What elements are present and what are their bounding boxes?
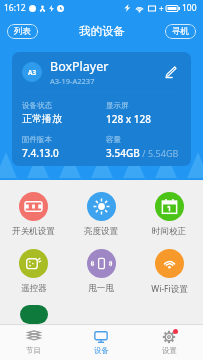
staticText: 100 (182, 2, 197, 14)
staticText: 7.4.13.0 (22, 146, 59, 160)
staticText: 3.54GB (106, 146, 140, 160)
staticText: A3 (28, 68, 37, 77)
button[interactable]: Wi-Fi设置 (135, 247, 203, 297)
button[interactable]: 设置 (135, 325, 203, 360)
button[interactable]: 时间校正 (135, 190, 203, 239)
staticText: 容量 (106, 135, 121, 144)
staticText: + (159, 3, 164, 14)
staticText: 我的设备 (79, 24, 125, 38)
staticText: 显示屏 (106, 101, 129, 110)
staticText: 设置 (162, 346, 177, 355)
staticText: / 5.54GB (140, 147, 179, 159)
button[interactable]: 列表 (7, 24, 38, 39)
button[interactable]: 开关机设置 (0, 190, 67, 239)
staticText: 开关机设置 (12, 226, 55, 237)
button[interactable]: 编辑 (159, 61, 181, 83)
staticText: 固件版本 (22, 135, 52, 144)
button[interactable]: 节目 (0, 325, 67, 360)
staticText: 时间校正 (152, 226, 186, 237)
staticText: 正常播放 (22, 112, 62, 125)
button[interactable]: 遥控器 (0, 247, 67, 296)
staticText: 16:12 (4, 2, 26, 14)
staticText: 遥控器 (21, 283, 47, 294)
button[interactable]: 亮度设置 (67, 190, 135, 239)
staticText: A3-19-A2237 (50, 76, 95, 86)
staticText: 甩一甩 (88, 283, 114, 294)
staticText: 设备 (94, 346, 109, 355)
button[interactable]: A3 (12, 52, 191, 166)
staticText: 节目 (26, 346, 41, 355)
staticText: Wi-Fi设置 (151, 283, 188, 295)
button[interactable]: 寻机 (165, 24, 196, 39)
staticText: BoxPlayer (50, 58, 109, 75)
button[interactable]: 甩一甩 (67, 247, 135, 296)
staticText: 列表 (14, 26, 31, 37)
staticText: 寻机 (172, 26, 189, 37)
staticText: 亮度设置 (84, 226, 118, 237)
staticText: 128 x 128 (106, 112, 151, 126)
button[interactable]: 更多 (20, 305, 48, 324)
button[interactable]: 设备 (67, 325, 135, 360)
staticText: 设备状态 (22, 101, 52, 110)
